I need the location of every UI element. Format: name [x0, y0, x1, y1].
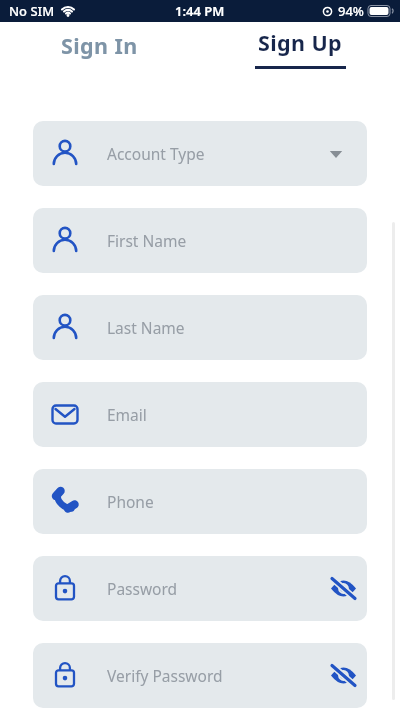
staticText: Phone — [107, 491, 154, 512]
button[interactable]: Verify Password — [33, 643, 367, 708]
button[interactable]: First Name — [33, 208, 367, 273]
staticText: Sign In — [61, 31, 138, 60]
staticText: Password — [107, 578, 178, 599]
staticText: Verify Password — [107, 665, 223, 686]
button[interactable]: Phone — [33, 469, 367, 534]
staticText: Last Name — [107, 317, 185, 338]
staticText: First Name — [107, 230, 187, 251]
button[interactable]: Sign In — [49, 28, 149, 62]
staticText: Email — [107, 404, 147, 425]
button[interactable]: Account Type — [33, 121, 367, 186]
staticText: Sign Up — [258, 28, 343, 57]
button[interactable]: Sign Up — [250, 28, 350, 70]
staticText: 1:44 PM — [175, 2, 225, 20]
button[interactable]: Last Name — [33, 295, 367, 360]
button[interactable]: Password — [33, 556, 367, 621]
staticText: No SIM — [9, 2, 55, 20]
staticText: 94% — [338, 2, 364, 20]
staticText: Account Type — [107, 143, 205, 164]
button[interactable]: Email — [33, 382, 367, 447]
